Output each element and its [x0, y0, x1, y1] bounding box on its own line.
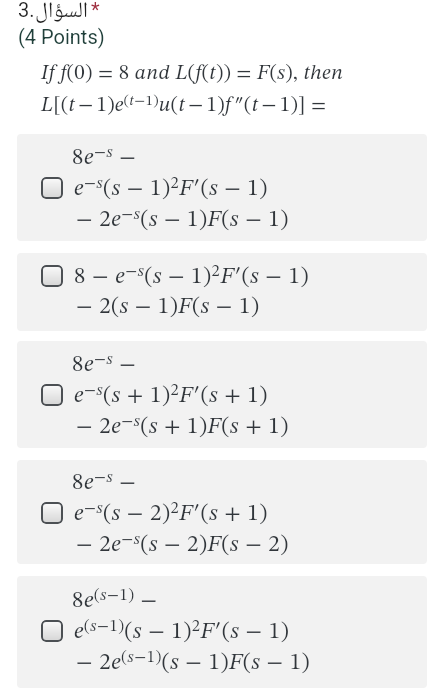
staticText: e−s(s + 1)2F′(s + 1)	[74, 382, 268, 408]
staticText: 8e−s −	[72, 144, 137, 170]
staticText: 8 − e−s(s − 1)2F′(s − 1)	[74, 263, 309, 289]
staticText: − 2e(s−1)(s − 1)F(s − 1)	[76, 649, 311, 675]
staticText: − 2e−s(s + 1)F(s + 1)	[76, 413, 289, 439]
staticText: (4 Points)	[18, 25, 105, 48]
staticText: السؤال	[35, 0, 89, 30]
staticText: 8e−s −	[72, 469, 137, 495]
button[interactable]: 8e−s −	[17, 134, 427, 241]
staticText: − 2e−s(s − 2)F(s − 2)	[76, 531, 289, 557]
staticText: L[(t − 1)e(t−1)u(t − 1)f ″(t − 1)] =	[41, 93, 327, 116]
staticText: − 2(s − 1)F(s − 1)	[76, 295, 260, 318]
staticText: 8e−s −	[72, 351, 137, 377]
staticText: − 2e−s(s − 1)F(s − 1)	[76, 206, 289, 232]
staticText: e(s−1)(s − 1)2F′(s − 1)	[74, 618, 290, 644]
staticText: *	[91, 0, 100, 21]
staticText: If f(0) = 8 and L(f(t)) = F(s), then	[41, 63, 344, 84]
staticText: 8e(s−1) −	[72, 587, 158, 613]
button[interactable]: 3.	[18, 0, 100, 33]
button[interactable]: 8e−s −	[17, 460, 427, 564]
button[interactable]: 8 − e−s(s − 1)2F′(s − 1)	[17, 253, 427, 331]
button[interactable]: 8e(s−1) −	[17, 576, 427, 688]
staticText: e−s(s − 2)2F′(s + 1)	[74, 500, 268, 526]
staticText: e−s(s − 1)2F′(s − 1)	[74, 175, 268, 201]
button[interactable]: 8e−s −	[17, 341, 427, 448]
staticText: 3.	[18, 0, 35, 21]
